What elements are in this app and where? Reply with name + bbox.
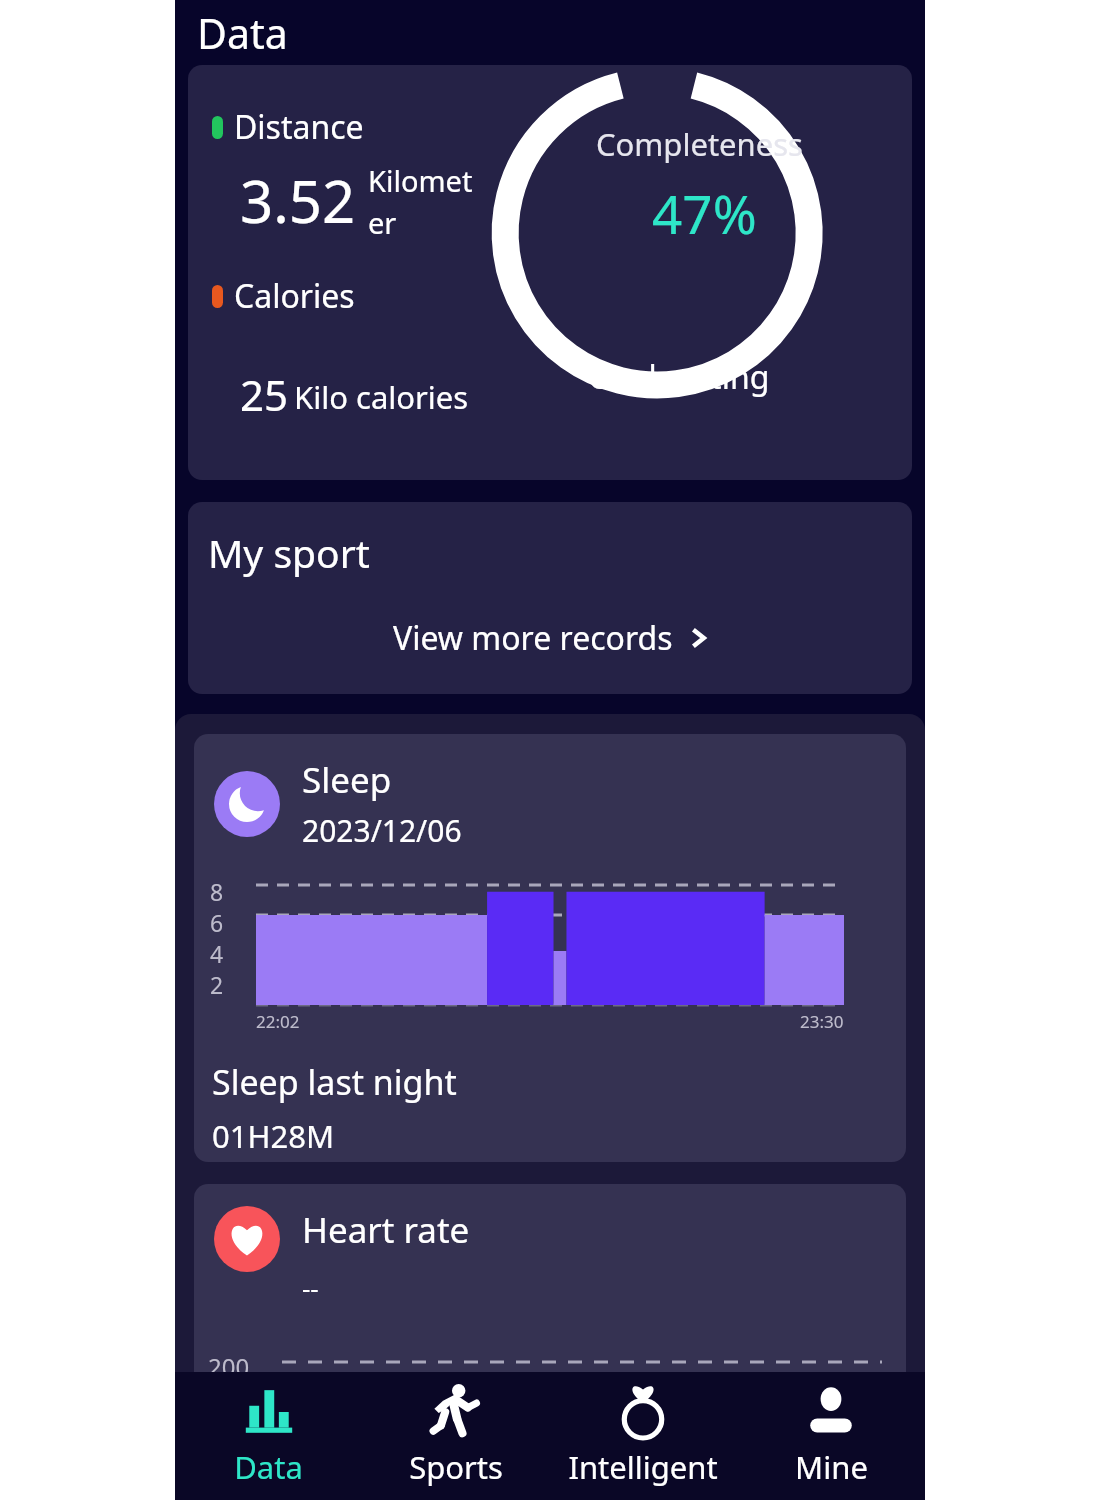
- button[interactable]: Data: [175, 1372, 362, 1500]
- staticText: --: [302, 1270, 319, 1305]
- staticText: 25: [240, 366, 289, 423]
- staticText: Mine: [795, 1446, 868, 1488]
- button[interactable]: View more records: [393, 616, 707, 660]
- staticText: 200: [208, 1350, 250, 1383]
- staticText: 01H28M: [212, 1115, 335, 1157]
- staticText: Completeness: [596, 123, 803, 165]
- other: Mine: [805, 1385, 857, 1439]
- staticText: Data: [234, 1446, 303, 1488]
- staticText: Distance: [234, 105, 364, 149]
- staticText: 6: [210, 907, 224, 938]
- staticText: 22:02: [256, 1010, 300, 1033]
- staticText: Kilomet er: [368, 161, 473, 242]
- staticText: Sleep: [302, 756, 392, 804]
- staticText: 8: [210, 876, 224, 907]
- staticText: Data: [197, 5, 288, 61]
- staticText: 2: [210, 969, 224, 999]
- staticText: Kilo calories: [294, 376, 469, 418]
- staticText: My sport: [208, 526, 370, 579]
- button[interactable]: Heart rate: [194, 1184, 906, 1444]
- button[interactable]: Goal setting: [588, 355, 770, 399]
- staticText: 2023/12/06: [302, 810, 462, 851]
- button[interactable]: Distance: [188, 65, 912, 480]
- staticText: Heart rate: [302, 1206, 470, 1254]
- other: Intelligent: [617, 1384, 669, 1440]
- staticText: 4: [210, 938, 224, 969]
- staticText: Goal setting: [588, 355, 770, 399]
- button[interactable]: Intelligent: [549, 1372, 737, 1500]
- button[interactable]: Mine: [737, 1372, 925, 1500]
- staticText: Calories: [234, 274, 355, 318]
- button[interactable]: Sleep: [194, 734, 906, 1162]
- staticText: Intelligent: [568, 1446, 718, 1488]
- staticText: Sleep last night: [212, 1059, 457, 1105]
- staticText: Sports: [409, 1446, 503, 1488]
- button[interactable]: My sport: [188, 502, 912, 694]
- other: Sports: [429, 1384, 483, 1440]
- staticText: 3.52: [240, 161, 356, 240]
- staticText: 23:30: [800, 1010, 844, 1033]
- button[interactable]: Sports: [362, 1372, 549, 1500]
- staticText: View more records: [393, 616, 673, 660]
- other: Data: [240, 1386, 298, 1438]
- staticText: 47%: [652, 177, 757, 249]
- staticText: 150: [208, 1394, 250, 1427]
